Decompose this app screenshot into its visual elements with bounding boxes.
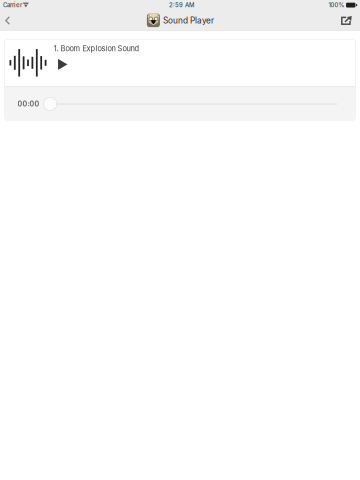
button[interactable]: Share bbox=[335, 11, 357, 30]
staticText: Sound Player bbox=[163, 15, 214, 25]
staticText: 100% bbox=[329, 1, 345, 9]
staticText: 2:59 AM bbox=[169, 1, 194, 9]
button[interactable]: Play bbox=[54, 56, 71, 72]
button[interactable]: Back bbox=[0, 11, 19, 30]
staticText: Carrier bbox=[3, 1, 22, 9]
staticText: 00:00 bbox=[18, 100, 40, 108]
staticText: 1. Boom Explosion Sound bbox=[53, 44, 139, 53]
